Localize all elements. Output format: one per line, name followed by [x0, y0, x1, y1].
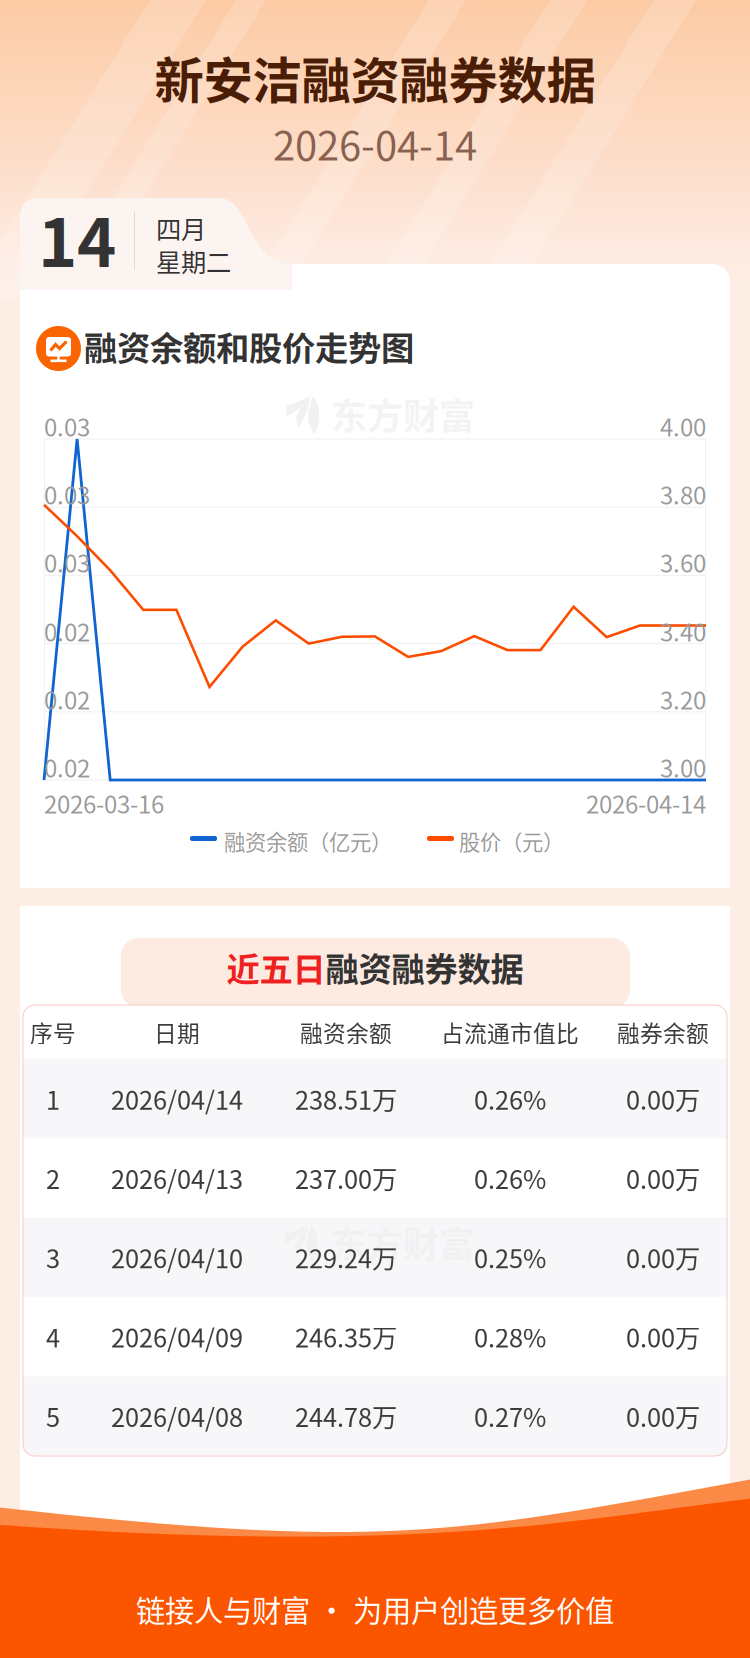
staticText: 237.00万 — [295, 1160, 397, 1196]
staticText: 5 — [46, 1397, 60, 1434]
staticText: 融资余额 — [300, 1016, 392, 1048]
staticText: 4.00 — [660, 409, 706, 443]
staticText: 0.27% — [474, 1397, 546, 1434]
staticText: 246.35万 — [295, 1318, 397, 1355]
staticText: 0.00万 — [626, 1239, 700, 1276]
staticText: 融券余额 — [617, 1016, 709, 1048]
staticText: 4 — [46, 1318, 60, 1355]
staticText: 融资融券数据 — [325, 943, 523, 991]
staticText: 2026/04/08 — [111, 1397, 243, 1434]
staticText: 2026-03-16 — [44, 786, 164, 820]
staticText: 0.03 — [44, 477, 90, 511]
staticText: 2026-04-14 — [273, 114, 477, 172]
staticText: 3.80 — [660, 477, 706, 511]
staticText: 238.51万 — [295, 1080, 397, 1117]
staticText: 1 — [46, 1080, 60, 1117]
staticText: 2026/04/14 — [111, 1080, 243, 1117]
staticText: 融资余额（亿元） — [224, 826, 392, 856]
staticText: 3.40 — [660, 614, 706, 648]
staticText: 0.28% — [474, 1318, 546, 1355]
staticText: 229.24万 — [295, 1239, 397, 1276]
staticText: 0.26% — [474, 1080, 546, 1117]
staticText: 日期 — [154, 1016, 200, 1048]
staticText: 星期二 — [156, 243, 231, 279]
staticText: 2026/04/09 — [111, 1318, 243, 1355]
staticText: 2026/04/10 — [111, 1239, 243, 1276]
staticText: 0.02 — [44, 614, 90, 648]
staticText: 3.20 — [660, 682, 706, 716]
staticText: 融资余额和股价走势图 — [84, 322, 414, 370]
staticText: 2 — [46, 1160, 60, 1196]
staticText: 0.25% — [474, 1239, 546, 1276]
staticText: 近五日 — [226, 943, 325, 991]
staticText: 244.78万 — [295, 1397, 397, 1434]
staticText: 2026-04-14 — [586, 786, 706, 820]
staticText: 0.03 — [44, 409, 90, 443]
staticText: 3.00 — [660, 750, 706, 784]
staticText: 序号 — [30, 1016, 76, 1048]
staticText: 0.03 — [44, 545, 90, 579]
staticText: 新安洁融资融券数据 — [154, 41, 595, 113]
staticText: 链接人与财富 · 为用户创造更多价值 — [136, 1588, 614, 1630]
staticText: 东方财富 — [331, 1216, 475, 1268]
staticText: 14 — [38, 190, 116, 286]
staticText: 0.02 — [44, 750, 90, 784]
staticText: 股价（元） — [459, 826, 564, 856]
staticText: 0.00万 — [626, 1397, 700, 1434]
staticText: 占流通市值比 — [441, 1016, 579, 1048]
staticText: 0.00万 — [626, 1160, 700, 1196]
staticText: 0.02 — [44, 682, 90, 716]
staticText: 四月 — [156, 210, 206, 246]
staticText: 3.60 — [660, 545, 706, 579]
staticText: 0.26% — [474, 1160, 546, 1196]
staticText: 3 — [46, 1239, 60, 1276]
staticText: 0.00万 — [626, 1318, 700, 1355]
staticText: 0.00万 — [626, 1080, 700, 1117]
staticText: 2026/04/13 — [111, 1160, 243, 1196]
staticText: 东方财富 — [331, 388, 475, 440]
